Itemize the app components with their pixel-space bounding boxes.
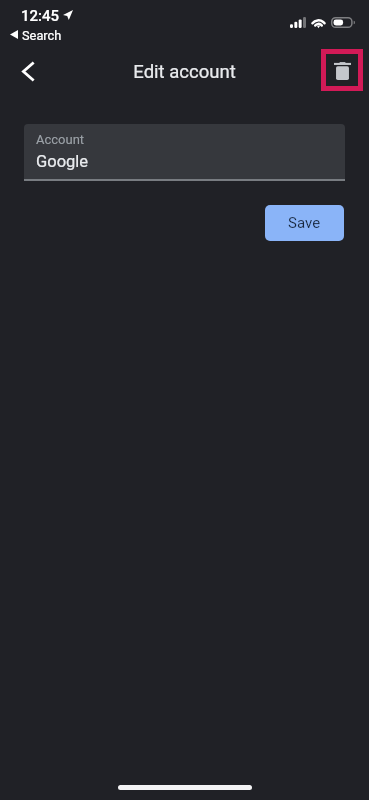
staticText: Search [22, 28, 62, 43]
button[interactable]: Save [265, 205, 344, 241]
button[interactable]: Back [10, 53, 46, 89]
button[interactable]: Account [24, 124, 345, 181]
button[interactable]: Delete [326, 54, 358, 86]
staticText: Account [36, 132, 85, 147]
staticText: Save [288, 214, 321, 232]
staticText: Edit account [133, 61, 236, 83]
staticText: 12:45 [21, 7, 60, 25]
staticText: Google [36, 152, 89, 171]
